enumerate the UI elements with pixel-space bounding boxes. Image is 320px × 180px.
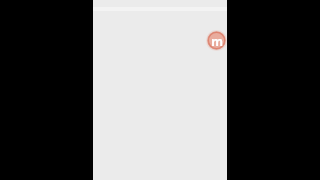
staticText: m	[211, 33, 223, 49]
